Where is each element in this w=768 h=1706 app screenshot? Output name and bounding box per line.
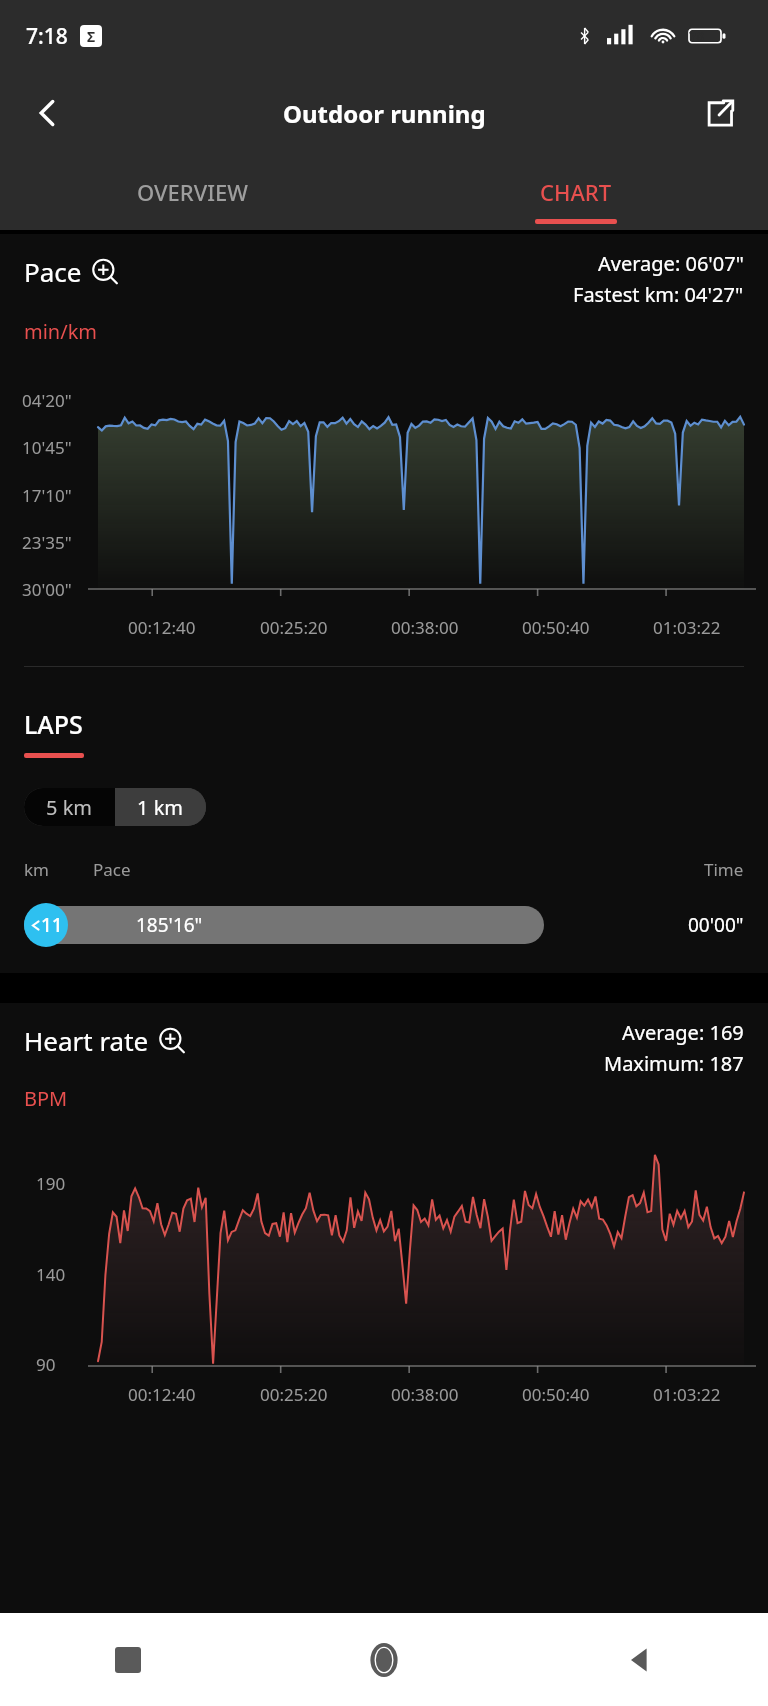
staticText: 00'00" [688, 912, 744, 938]
button[interactable]: Back [512, 1613, 768, 1706]
staticText: 00:12:40 [128, 1383, 196, 1406]
button[interactable]: Home [256, 1613, 512, 1706]
staticText: 23'35" [22, 531, 72, 554]
staticText: 17'10" [22, 484, 72, 507]
staticText: Pace [93, 858, 131, 881]
staticText: 185'16" [136, 912, 203, 938]
staticText: 90 [36, 1353, 56, 1376]
staticText: OVERVIEW [137, 177, 248, 207]
button[interactable]: CHART [384, 154, 768, 230]
staticText: 10'45" [22, 436, 72, 459]
staticText: 11 [41, 912, 63, 938]
staticText: Heart rate [24, 1023, 149, 1058]
staticText: min/km [24, 318, 98, 345]
button[interactable]: Pace [24, 250, 119, 293]
staticText: 04'20" [22, 389, 72, 412]
staticText: 01:03:22 [653, 1383, 721, 1406]
staticText: Outdoor running [283, 97, 486, 130]
staticText: 7:18 [26, 22, 68, 51]
staticText: 00:38:00 [391, 616, 459, 639]
staticText: 5 km [46, 794, 93, 821]
staticText: 00:50:40 [522, 616, 590, 639]
button[interactable]: Share [672, 72, 768, 154]
staticText: 140 [36, 1263, 66, 1286]
staticText: 00:38:00 [391, 1383, 459, 1406]
staticText: Pace [24, 254, 82, 289]
staticText: Time [704, 858, 744, 881]
staticText: 00:50:40 [522, 1383, 590, 1406]
button[interactable]: Heart rate [24, 1019, 186, 1062]
staticText: 1 km [137, 794, 184, 821]
button[interactable]: 1 km [115, 788, 206, 826]
button[interactable]: 185'16" [24, 903, 744, 947]
staticText: Average: 169 [622, 1019, 744, 1046]
staticText: 00:25:20 [260, 1383, 328, 1406]
staticText: 78 [689, 27, 704, 45]
button[interactable]: OVERVIEW [0, 154, 384, 230]
staticText: Maximum: 187 [604, 1050, 744, 1077]
staticText: km [24, 858, 49, 881]
button[interactable]: Back [0, 72, 96, 154]
staticText: Fastest km: 04'27" [573, 281, 744, 308]
button[interactable]: 5 km [24, 788, 115, 826]
staticText: Σ [87, 27, 96, 46]
staticText: 30'00" [22, 578, 72, 601]
staticText: 00:25:20 [260, 616, 328, 639]
staticText: 00:12:40 [128, 616, 196, 639]
staticText: BPM [24, 1085, 68, 1112]
staticText: LAPS [24, 707, 83, 741]
staticText: CHART [540, 177, 612, 207]
staticText: 190 [36, 1172, 66, 1195]
button[interactable]: Recent apps [0, 1613, 256, 1706]
staticText: Average: 06'07" [598, 250, 744, 277]
staticText: 01:03:22 [653, 616, 721, 639]
